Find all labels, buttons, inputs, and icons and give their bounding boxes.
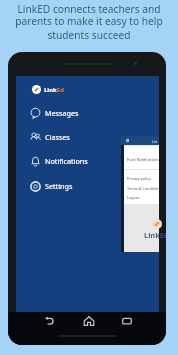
staticText: LinkEd xyxy=(144,230,166,240)
staticText: Settings xyxy=(45,181,73,191)
staticText: Terms & Conditions xyxy=(127,186,162,191)
staticText: Privacy policy xyxy=(127,176,151,181)
button[interactable]: Back xyxy=(43,315,55,327)
staticText: Logout xyxy=(127,195,140,200)
staticText: LinkEd xyxy=(44,86,64,94)
staticText: LinkED connects teachers and xyxy=(0,2,178,16)
staticText: Classes xyxy=(45,132,70,142)
staticText: Push Notifications xyxy=(127,157,159,162)
button[interactable]: Settings xyxy=(30,177,125,195)
button[interactable]: Messages xyxy=(30,104,125,122)
staticText: Messages xyxy=(45,108,79,118)
button[interactable]: Logout xyxy=(124,193,159,202)
button[interactable]: Terms & Conditions xyxy=(124,184,159,193)
button[interactable]: Home xyxy=(83,315,95,327)
staticText: students succeed xyxy=(0,28,178,42)
staticText: Notifications xyxy=(45,156,88,166)
button[interactable]: Recent apps xyxy=(121,315,133,327)
button[interactable]: LinkEd xyxy=(32,85,64,94)
button[interactable]: Push Notifications xyxy=(124,155,159,164)
staticText: Lin xyxy=(152,139,158,144)
button[interactable]: Classes xyxy=(30,128,125,146)
button[interactable]: Notifications xyxy=(30,152,125,170)
button[interactable]: Privacy policy xyxy=(124,174,159,183)
staticText: parents to make it easy to help xyxy=(0,14,178,28)
